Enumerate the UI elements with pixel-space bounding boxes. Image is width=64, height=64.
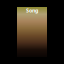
staticText: Song — [26, 7, 38, 14]
